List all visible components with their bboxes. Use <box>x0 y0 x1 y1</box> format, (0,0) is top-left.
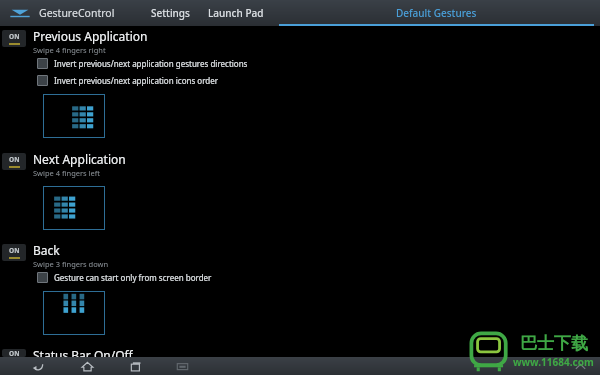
button[interactable]: Launch Pad <box>199 0 273 26</box>
staticText: ON <box>9 32 20 41</box>
button[interactable]: Toggle Next Application on or off <box>0 151 600 178</box>
button[interactable]: Gesture preview <box>43 291 105 335</box>
staticText: Invert previous/next application icons o… <box>54 75 219 86</box>
button[interactable]: Toggle Status Bar On/Off on or off <box>0 347 600 357</box>
staticText: Swipe 4 fingers right <box>33 45 106 55</box>
staticText: Next Application <box>33 151 126 167</box>
staticText: Settings <box>151 6 190 20</box>
button[interactable]: Toggle Previous Application on or off <box>2 30 26 47</box>
staticText: Swipe 3 fingers down <box>33 259 109 269</box>
staticText: Back <box>33 242 60 258</box>
button[interactable]: Toggle Status Bar On/Off on or off <box>2 349 26 357</box>
button[interactable]: GestureControl app icon <box>7 3 33 23</box>
button[interactable]: Gesture preview <box>43 186 105 230</box>
button[interactable]: Gesture can start only from screen borde… <box>37 272 600 283</box>
button[interactable]: Toggle Back on or off <box>2 244 26 261</box>
staticText: GestureControl <box>39 6 115 20</box>
staticText: Status Bar On/Off <box>33 347 133 357</box>
staticText: ON <box>9 246 20 255</box>
staticText: Default Gestures <box>396 6 477 20</box>
button[interactable]: Default Gestures <box>273 0 600 26</box>
button[interactable]: Home <box>79 358 95 374</box>
staticText: Invert previous/next application gesture… <box>54 58 248 69</box>
button[interactable]: Invert previous/next application icons o… <box>37 75 600 86</box>
button[interactable]: Settings <box>142 0 199 26</box>
staticText: ON <box>9 349 20 357</box>
button[interactable]: Recent apps <box>127 358 143 374</box>
staticText: Previous Application <box>33 28 148 44</box>
staticText: Launch Pad <box>208 6 264 20</box>
button[interactable]: Toggle Previous Application on or off <box>0 28 600 55</box>
button[interactable]: Toggle Back on or off <box>0 242 600 269</box>
staticText: Gesture can start only from screen borde… <box>54 272 212 283</box>
button[interactable]: Screenshot <box>174 358 190 374</box>
button[interactable]: Back <box>30 358 46 374</box>
staticText: Swipe 4 fingers left <box>33 168 101 178</box>
staticText: 巴士下载 <box>520 333 588 354</box>
button[interactable]: Invert previous/next application gesture… <box>37 58 600 69</box>
staticText: www.11684.com <box>513 355 594 369</box>
staticText: ON <box>9 155 20 164</box>
button[interactable]: Show notifications <box>572 358 588 374</box>
button[interactable]: Toggle Next Application on or off <box>2 153 26 170</box>
button[interactable]: Gesture preview <box>43 94 105 138</box>
